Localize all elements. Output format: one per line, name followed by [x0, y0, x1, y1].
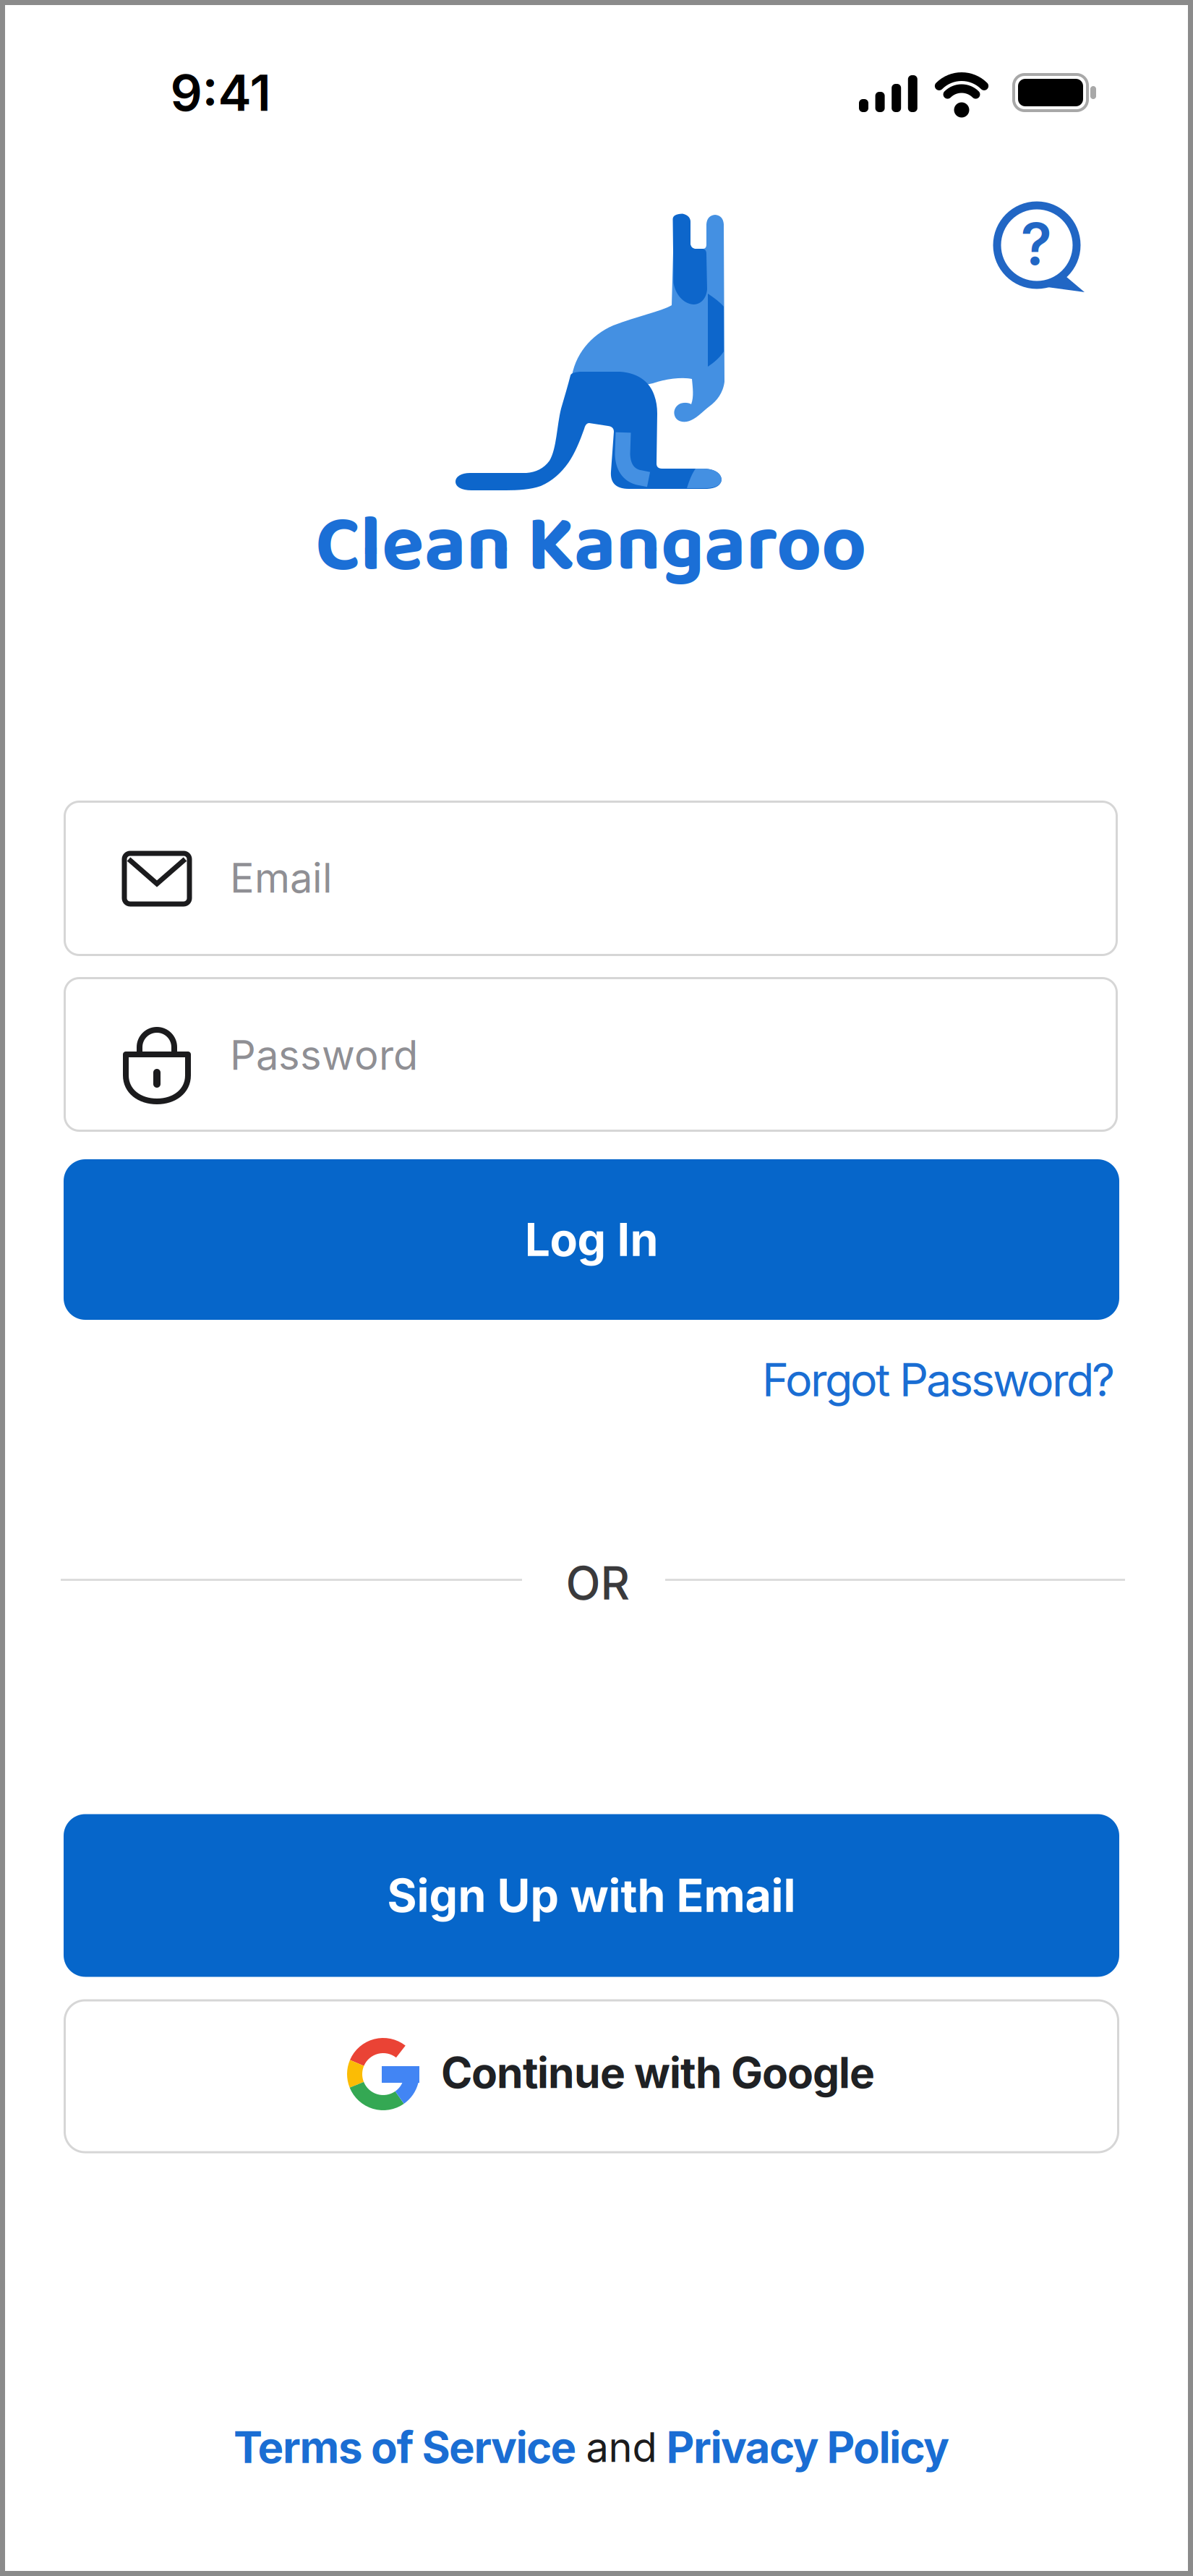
staticText: OR	[566, 1556, 630, 1610]
staticText: and	[586, 2423, 657, 2472]
button[interactable]: Continue with Google	[64, 1999, 1119, 2153]
button[interactable]: Privacy Policy	[666, 2421, 949, 2474]
staticText: Privacy Policy	[666, 2421, 949, 2474]
button[interactable]: Terms of Service	[234, 2421, 577, 2474]
staticText: 9:41	[170, 62, 271, 123]
staticText: Log In	[525, 1212, 658, 1267]
staticText: Continue with Google	[441, 2047, 875, 2098]
staticText: ?	[1021, 209, 1052, 279]
staticText: Password	[230, 1031, 418, 1080]
staticText: Forgot Password?	[762, 1352, 1115, 1407]
button[interactable]: Sign Up with Email	[64, 1814, 1119, 1977]
staticText: Clean Kangaroo	[315, 484, 866, 609]
staticText: Email	[230, 853, 333, 902]
staticText: Terms of Service	[234, 2421, 577, 2474]
staticText: Sign Up with Email	[387, 1868, 796, 1923]
button[interactable]: Help	[980, 184, 1106, 311]
button[interactable]: Forgot Password?	[762, 1352, 1115, 1407]
button[interactable]: Log In	[64, 1159, 1119, 1320]
